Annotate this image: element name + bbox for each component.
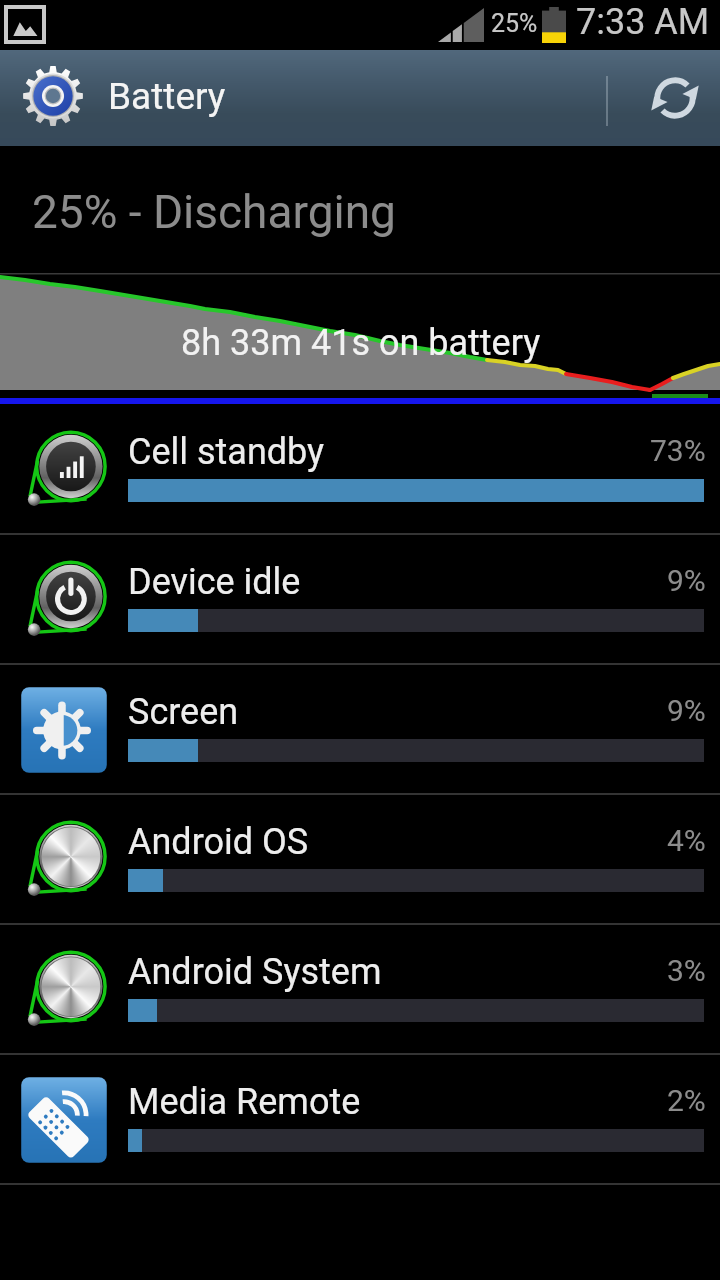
staticText: 9%: [667, 563, 706, 598]
staticText: 7:33 AM: [576, 1, 710, 43]
button[interactable]: Media Remote: [0, 1055, 720, 1185]
staticText: Cell standby: [128, 431, 325, 473]
staticText: Device idle: [128, 561, 301, 603]
button[interactable]: Android System: [0, 925, 720, 1055]
button[interactable]: Screen: [0, 665, 720, 795]
staticText: 9%: [667, 693, 706, 728]
button[interactable]: Device idle: [0, 535, 720, 665]
staticText: Battery: [108, 75, 226, 118]
staticText: 3%: [667, 953, 706, 988]
staticText: 8h 33m 41s on battery: [181, 322, 541, 364]
staticText: 4%: [667, 823, 706, 858]
button[interactable]: Refresh: [630, 50, 720, 146]
staticText: 73%: [650, 433, 706, 468]
staticText: Screen: [128, 691, 239, 733]
button[interactable]: Cell standby: [0, 405, 720, 535]
staticText: Media Remote: [128, 1081, 361, 1123]
staticText: 25% - Discharging: [32, 185, 396, 239]
button[interactable]: Android OS: [0, 795, 720, 925]
staticText: Android OS: [128, 821, 309, 863]
staticText: 25%: [491, 9, 538, 38]
staticText: Android System: [128, 951, 382, 993]
staticText: 2%: [667, 1083, 706, 1118]
button[interactable]: Battery: [0, 50, 300, 146]
